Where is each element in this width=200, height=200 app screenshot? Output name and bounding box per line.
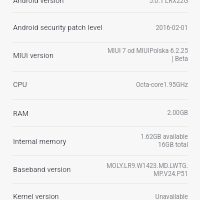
staticText: 2016-02-01 <box>103 24 188 32</box>
staticText: Baseband version <box>13 165 71 174</box>
button[interactable]: RAM <box>0 100 200 126</box>
staticText: MIUI version <box>13 51 54 60</box>
button[interactable]: Android security patch level <box>0 13 200 42</box>
button[interactable]: CPU <box>0 72 200 99</box>
staticText: Android security patch level <box>13 23 103 32</box>
staticText: 2.00GB <box>102 109 188 117</box>
staticText: MOLY.LR9.W1423.MD.LWTG. MP.V24.P51 <box>102 162 188 178</box>
staticText: MIUI 7 od MIUIPolska 6.2.25 | Beta <box>102 47 188 63</box>
staticText: 5.0.1 LRX22G <box>102 0 188 5</box>
staticText: Octa-core1.95GHz <box>102 81 188 89</box>
button[interactable]: MIUI version <box>0 43 200 71</box>
staticText: RAM <box>13 109 29 118</box>
button[interactable]: Internal memory <box>0 127 200 155</box>
staticText: Kernel version <box>13 192 59 200</box>
button[interactable]: Baseband version <box>0 156 200 183</box>
button[interactable]: Kernel version <box>0 192 200 200</box>
staticText: CPU <box>13 80 28 89</box>
staticText: Android version <box>13 0 64 5</box>
staticText: 1.62GB available 16GB total <box>102 133 188 149</box>
staticText: Unavailable <box>102 193 188 200</box>
staticText: Internal memory <box>13 137 67 146</box>
